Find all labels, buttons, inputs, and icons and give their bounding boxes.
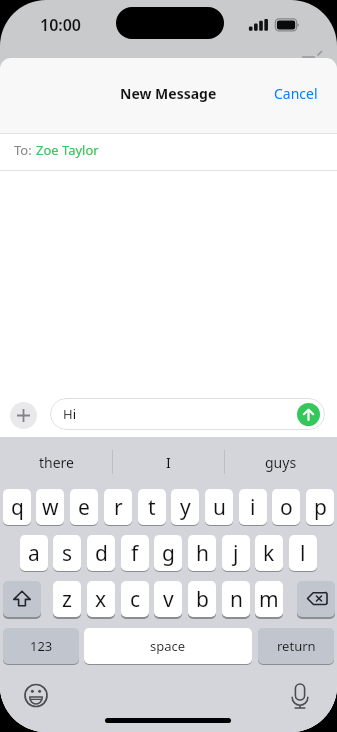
button[interactable]: i [239, 489, 267, 525]
staticText: r [114, 493, 123, 522]
staticText: i [250, 493, 256, 522]
staticText: 123 [30, 637, 53, 655]
staticText: v [163, 585, 174, 614]
staticText: n [230, 585, 243, 614]
staticText: x [95, 585, 107, 614]
staticText: k [263, 539, 275, 568]
button[interactable]: x [87, 581, 115, 617]
button[interactable]: p [306, 489, 334, 525]
button[interactable] [10, 402, 37, 429]
staticText: o [280, 493, 293, 522]
staticText: g [162, 539, 175, 568]
button[interactable]: e [70, 489, 98, 525]
button[interactable]: return [258, 628, 334, 664]
staticText: u [213, 493, 226, 522]
staticText: Zoe Taylor [36, 141, 99, 159]
staticText: l [300, 539, 306, 568]
staticText: z [62, 585, 72, 614]
staticText: h [196, 539, 209, 568]
staticText: q [11, 493, 24, 522]
button[interactable]: h [188, 535, 216, 571]
button[interactable]: guys [225, 443, 337, 481]
button[interactable]: Hi [50, 398, 325, 430]
button[interactable]: v [154, 581, 182, 617]
staticText: guys [265, 453, 297, 472]
button[interactable]: g [154, 535, 182, 571]
staticText: space [150, 637, 186, 655]
button[interactable]: Cancel [260, 73, 330, 113]
staticText: there [39, 453, 74, 472]
button[interactable]: n [222, 581, 250, 617]
button[interactable] [16, 673, 58, 715]
button[interactable]: m [255, 581, 283, 617]
staticText: j [233, 539, 239, 568]
staticText: New Message [120, 84, 217, 103]
staticText: a [28, 539, 40, 568]
staticText: m [259, 585, 279, 614]
button[interactable] [297, 403, 320, 426]
staticText: p [314, 493, 327, 522]
staticText: I [166, 453, 171, 472]
button[interactable]: d [87, 535, 115, 571]
button[interactable]: z [53, 581, 81, 617]
button[interactable]: j [222, 535, 250, 571]
button[interactable]: To: [0, 134, 337, 170]
button[interactable]: space [84, 628, 252, 664]
staticText: Cancel [274, 84, 318, 103]
button[interactable]: y [171, 489, 199, 525]
button[interactable] [278, 673, 322, 715]
staticText: Hi [63, 405, 76, 423]
button[interactable]: b [188, 581, 216, 617]
staticText: w [42, 493, 59, 522]
staticText: y [180, 493, 191, 522]
button[interactable]: 123 [3, 628, 79, 664]
staticText: return [277, 637, 316, 655]
staticText: To: [14, 141, 36, 159]
staticText: b [196, 585, 209, 614]
button[interactable]: f [121, 535, 149, 571]
button[interactable]: a [20, 535, 48, 571]
staticText: d [95, 539, 108, 568]
button[interactable]: r [104, 489, 132, 525]
button[interactable]: l [289, 535, 317, 571]
staticText: e [78, 493, 90, 522]
staticText: c [130, 585, 141, 614]
button[interactable]: t [138, 489, 166, 525]
button[interactable]: w [36, 489, 64, 525]
staticText: f [131, 539, 139, 568]
button[interactable] [3, 581, 41, 617]
button[interactable]: I [112, 443, 224, 481]
button[interactable]: q [3, 489, 31, 525]
button[interactable]: o [272, 489, 300, 525]
staticText: s [62, 539, 73, 568]
button[interactable]: s [53, 535, 81, 571]
button[interactable]: u [205, 489, 233, 525]
button[interactable]: there [0, 443, 112, 481]
staticText: 10:00 [40, 14, 82, 36]
button[interactable]: k [255, 535, 283, 571]
button[interactable]: c [121, 581, 149, 617]
button[interactable] [297, 581, 335, 617]
staticText: t [148, 493, 156, 522]
